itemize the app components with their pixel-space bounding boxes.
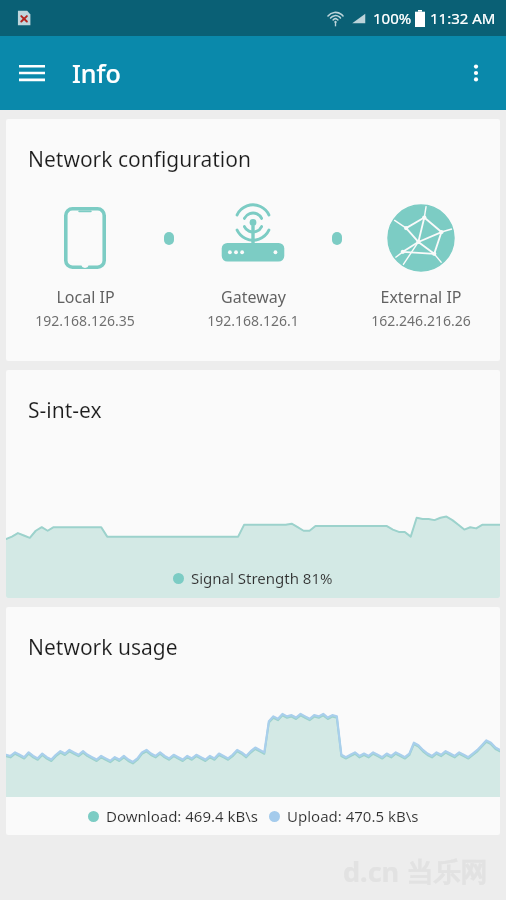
- button[interactable]: Network configuration: [6, 119, 500, 361]
- staticText: 192.168.126.35: [35, 311, 135, 330]
- staticText: 11:32 AM: [430, 8, 496, 28]
- staticText: d.cn 当乐网: [343, 853, 488, 890]
- button[interactable]: Network usage: [6, 607, 500, 835]
- staticText: Network configuration: [28, 145, 251, 174]
- button[interactable]: Open navigation menu: [8, 49, 56, 97]
- staticText: Gateway: [221, 286, 286, 308]
- staticText: Network usage: [28, 633, 178, 662]
- staticText: 100%: [373, 8, 412, 28]
- staticText: Upload: 470.5 kB\s: [287, 806, 419, 826]
- button[interactable]: More options: [452, 49, 500, 97]
- staticText: 162.246.216.26: [371, 311, 471, 330]
- button[interactable]: S-int-ex: [6, 370, 500, 598]
- staticText: Local IP: [56, 286, 115, 308]
- staticText: 192.168.126.1: [207, 311, 299, 330]
- staticText: S-int-ex: [28, 396, 102, 425]
- staticText: External IP: [380, 286, 462, 308]
- staticText: Info: [72, 56, 121, 90]
- staticText: Signal Strength 81%: [191, 568, 333, 588]
- staticText: Download: 469.4 kB\s: [106, 806, 259, 826]
